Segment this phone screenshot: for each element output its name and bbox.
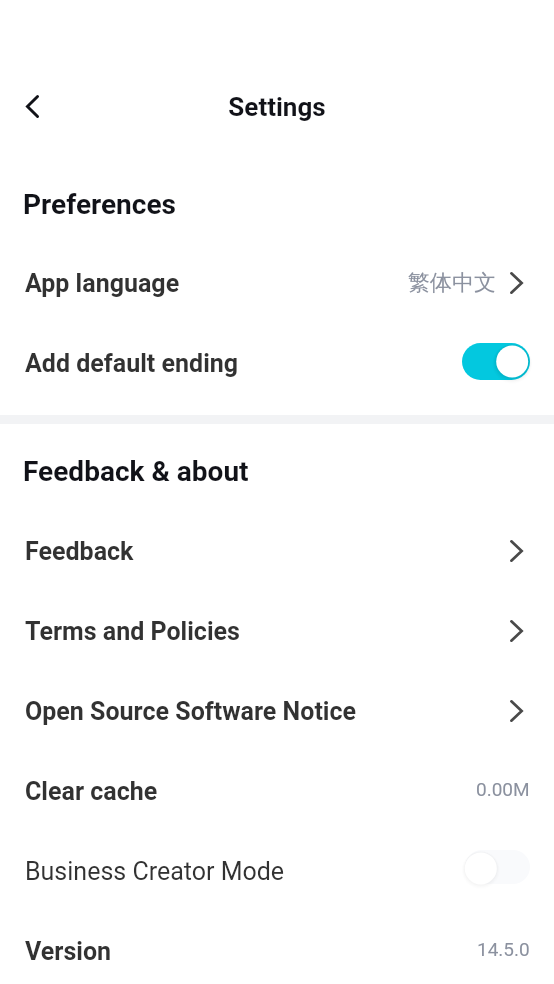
button[interactable]: Business Creator Mode (0, 831, 554, 911)
staticText: Clear cache (25, 777, 158, 806)
staticText: Business Creator Mode (25, 857, 285, 886)
button[interactable]: Add default ending (0, 323, 554, 403)
button[interactable]: Open Source Software Notice (0, 671, 554, 751)
button[interactable]: Clear cache (0, 751, 554, 831)
button[interactable]: Version (0, 911, 554, 984)
button[interactable]: App language (0, 243, 554, 323)
button[interactable]: Feedback (0, 511, 554, 591)
staticText: Preferences (23, 188, 176, 221)
staticText: 0.00M (476, 778, 530, 800)
staticText: Open Source Software Notice (25, 697, 357, 726)
staticText: Terms and Policies (25, 617, 240, 646)
button[interactable]: Toggle off (465, 847, 530, 887)
staticText: 14.5.0 (477, 938, 530, 960)
staticText: Settings (0, 92, 554, 122)
staticText: Feedback & about (23, 455, 249, 488)
staticText: Add default ending (25, 349, 239, 378)
button[interactable]: Back (11, 85, 53, 127)
staticText: App language (25, 269, 180, 298)
staticText: Feedback (25, 537, 134, 566)
staticText: 繁体中文 (408, 269, 496, 297)
button[interactable]: Terms and Policies (0, 591, 554, 671)
staticText: Version (25, 937, 112, 966)
button[interactable]: Toggle on (462, 341, 530, 381)
